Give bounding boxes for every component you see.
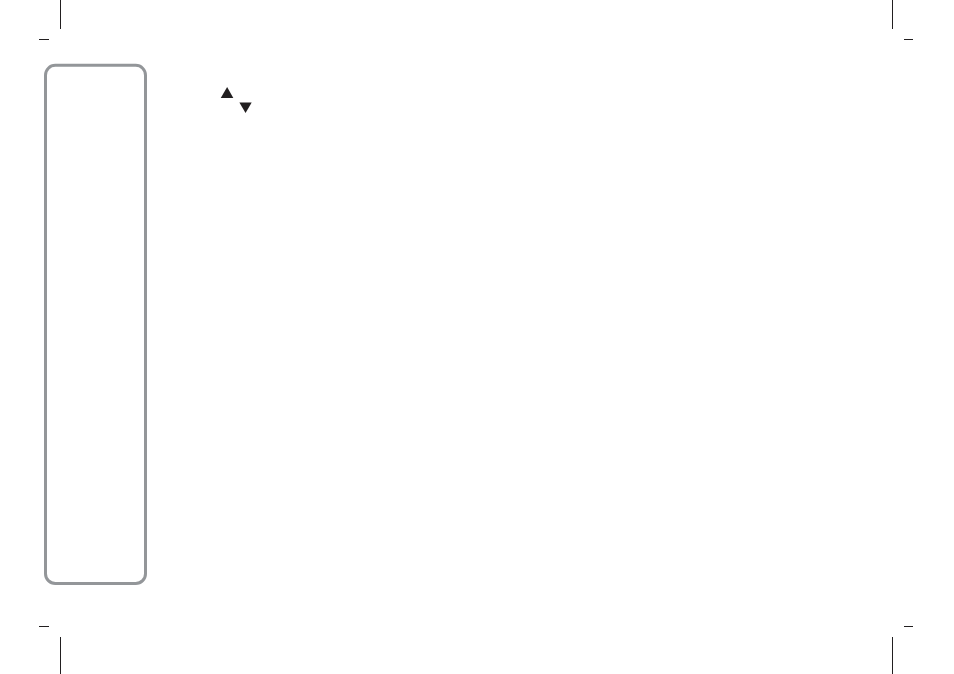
- button[interactable]: Device frame template: [44, 64, 148, 585]
- button[interactable]: Scroll down: [239, 102, 253, 114]
- button[interactable]: Scroll up: [220, 86, 234, 99]
